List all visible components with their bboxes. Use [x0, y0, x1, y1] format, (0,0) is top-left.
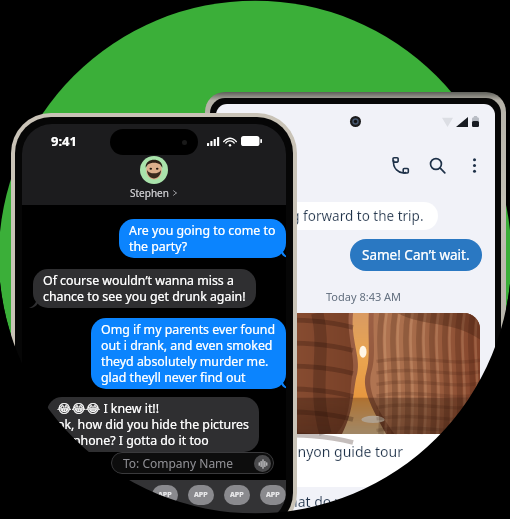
- staticText: What do you think?: [276, 492, 403, 511]
- staticText: Stephen: [130, 186, 169, 200]
- staticText: Same! Can’t wait.: [362, 246, 470, 264]
- button[interactable]: Of course wouldn’t wanna miss a chance t…: [33, 269, 256, 308]
- button[interactable]: Search: [424, 152, 450, 178]
- button[interactable]: Omg if my parents ever found out i drank…: [91, 318, 286, 389]
- button[interactable]: Are you going to come to the party?: [119, 219, 286, 258]
- button[interactable]: Stephen profile: [140, 156, 168, 184]
- staticText: Sooo looking forward to the trip.: [217, 207, 424, 225]
- staticText: 9:41: [51, 132, 77, 150]
- staticText: To: Company Name: [123, 455, 234, 471]
- staticText: Omg if my parents ever found out i drank…: [101, 321, 276, 386]
- button[interactable]: Call: [387, 152, 413, 178]
- staticText: APP: [230, 490, 244, 500]
- staticText: APP: [158, 490, 172, 500]
- button[interactable]: Sooo looking forward to the trip.: [216, 202, 438, 230]
- button[interactable]: To: Company Name: [111, 452, 274, 474]
- staticText: Stephen: [228, 154, 296, 177]
- staticText: Antelope Canyon guide tour: [218, 442, 404, 461]
- button[interactable]: APP: [224, 485, 250, 505]
- staticText: Today 8:43 AM: [326, 289, 402, 304]
- staticText: airbnb.com: [218, 462, 283, 478]
- button[interactable]: APP: [260, 485, 286, 505]
- staticText: 😂😂😂 I knew it!! ok, how did you hide the…: [57, 400, 249, 449]
- staticText: Are you going to come to the party?: [129, 222, 276, 255]
- button[interactable]: Audio message: [254, 455, 271, 472]
- button[interactable]: APP: [188, 485, 214, 505]
- button[interactable]: APP: [152, 485, 178, 505]
- button[interactable]: Antelope Canyon guide tour: [216, 313, 480, 487]
- button[interactable]: More options: [461, 152, 487, 178]
- staticText: Of course wouldn’t wanna miss a chance t…: [43, 272, 246, 305]
- button[interactable]: Same! Can’t wait.: [350, 239, 482, 271]
- staticText: APP: [194, 490, 208, 500]
- staticText: APP: [266, 490, 280, 500]
- button[interactable]: 😂😂😂 I knew it!! ok, how did you hide the…: [47, 397, 259, 452]
